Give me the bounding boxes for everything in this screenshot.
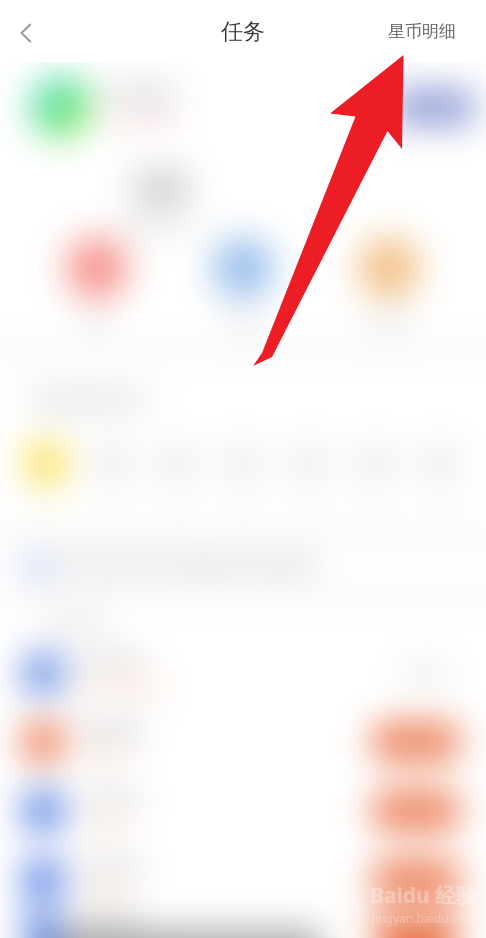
- staticText: 用户昵称: [106, 84, 174, 105]
- staticText: 我的星币: [124, 211, 192, 228]
- staticText: 分享好友: [78, 789, 142, 809]
- staticText: 去完成: [394, 917, 439, 936]
- button[interactable]: 每日完成任务可获得更多星币奖励哦: [0, 543, 486, 589]
- staticText: 去完成: [394, 802, 439, 821]
- staticText: +15星币: [78, 815, 127, 833]
- staticText: 去完成: [394, 871, 439, 890]
- button[interactable]: 去完成: [372, 914, 460, 938]
- staticText: 邀请好友: [78, 914, 142, 934]
- staticText: 168: [129, 162, 188, 208]
- staticText: Baidu 经验: [370, 881, 478, 910]
- button[interactable]: 去完成: [372, 861, 460, 899]
- staticText: 去完成: [394, 733, 439, 752]
- button[interactable]: 每日签到: [0, 638, 486, 707]
- button[interactable]: 去完成: [372, 792, 460, 830]
- button[interactable]: 兑换: [194, 228, 292, 342]
- button[interactable]: 排行榜: [340, 228, 438, 342]
- staticText: 每日签到: [78, 651, 142, 671]
- button[interactable]: 去签到: [396, 91, 472, 123]
- staticText: +20星币: [78, 884, 127, 902]
- button[interactable]: Back: [2, 10, 46, 54]
- staticText: 星币明细: [388, 21, 456, 42]
- staticText: 完善资料: [78, 858, 142, 878]
- button[interactable]: 1天: [24, 441, 68, 519]
- button[interactable]: 星币明细: [384, 13, 460, 50]
- staticText: 今日已签到: [106, 113, 176, 131]
- button[interactable]: 邀请好友: [0, 914, 486, 938]
- staticText: 排行榜: [368, 315, 410, 333]
- button[interactable]: 观看视频: [0, 707, 486, 776]
- button[interactable]: 分享好友: [0, 776, 486, 845]
- button[interactable]: 去完成: [372, 723, 460, 761]
- staticText: +10星币: [78, 746, 127, 764]
- staticText: 任务: [83, 315, 111, 333]
- button[interactable]: 完善资料: [0, 845, 486, 914]
- staticText: 观看视频: [78, 720, 142, 740]
- button[interactable]: 任务: [48, 228, 146, 342]
- staticText: jingyan.baidu.com: [372, 910, 476, 926]
- staticText: 去签到: [413, 98, 455, 116]
- staticText: 每日可得5星币: [78, 677, 164, 695]
- staticText: 1天: [36, 501, 57, 519]
- staticText: 任务: [221, 18, 265, 46]
